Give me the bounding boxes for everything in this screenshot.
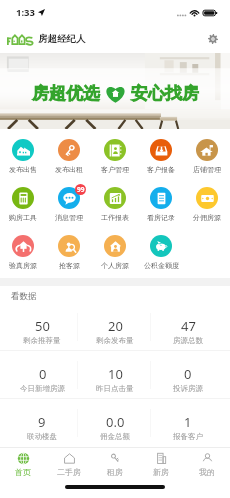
staticText: 剩余发布量 [96,336,134,345]
staticText: 二手房 [57,467,81,477]
staticText: 47 [181,317,196,335]
staticText: 工作报表 [101,213,129,222]
staticText: 店铺管理 [193,165,221,174]
staticText: 50 [35,317,50,335]
staticText: 个人房源 [101,261,129,270]
staticText: 抢客源 [59,261,80,270]
button[interactable]: 客户管理 [92,129,138,177]
staticText: 99 [77,185,85,194]
button[interactable]: 个人房源 [92,225,138,273]
staticText: 首页 [15,467,31,477]
button[interactable]: 99 [46,177,92,225]
button[interactable]: 二手房 [46,448,92,481]
button[interactable]: 首页 [0,448,46,481]
staticText: 客户管理 [101,165,129,174]
staticText: 看数据 [11,291,37,302]
staticText: 新房 [153,467,169,477]
button[interactable]: 验真房源 [0,225,46,273]
staticText: 1:33 [16,6,35,19]
staticText: 1 [184,413,192,431]
staticText: 房源总数 [173,336,203,345]
staticText: 公积金额度 [144,261,179,270]
staticText: 验真房源 [9,261,37,270]
button[interactable]: 分佣房源 [184,177,230,225]
button[interactable]: Settings [203,29,223,49]
staticText: 分佣房源 [193,213,221,222]
staticText: 购房工具 [9,213,37,222]
staticText: 我的 [199,467,215,477]
button[interactable]: 购房工具 [0,177,46,225]
button[interactable]: 客户报备 [138,129,184,177]
staticText: 消息管理 [55,213,83,222]
staticText: 0 [184,365,192,383]
staticText: 安心找房 [131,83,199,104]
button[interactable]: 抢客源 [46,225,92,273]
staticText: 租房 [107,467,123,477]
staticText: 0.0 [106,413,125,431]
staticText: 9 [38,413,46,431]
staticText: 客户报备 [147,165,175,174]
staticText: 发布出售 [9,165,37,174]
staticText: 房超经纪人 [38,33,86,45]
staticText: 报备客户 [173,432,203,441]
staticText: 10 [108,365,123,383]
button[interactable]: 工作报表 [92,177,138,225]
button[interactable]: 新房 [138,448,184,481]
staticText: 投诉房源 [173,384,203,393]
button[interactable]: 租房 [92,448,138,481]
staticText: 今日新增房源 [20,384,65,393]
button[interactable]: 店铺管理 [184,129,230,177]
staticText: 房超优选 [32,83,100,104]
staticText: 20 [108,317,123,335]
staticText: 昨日点击量 [96,384,134,393]
staticText: 佣金总额 [100,432,130,441]
staticText: 0 [39,365,47,383]
button[interactable]: 公积金额度 [138,225,184,273]
staticText: 联动楼盘 [27,432,57,441]
staticText: 剩余推荐量 [23,336,61,345]
button[interactable]: 发布出租 [46,129,92,177]
staticText: 看房记录 [147,213,175,222]
button[interactable]: 我的 [184,448,230,481]
staticText: 发布出租 [55,165,83,174]
button[interactable]: 看房记录 [138,177,184,225]
button[interactable]: 发布出售 [0,129,46,177]
